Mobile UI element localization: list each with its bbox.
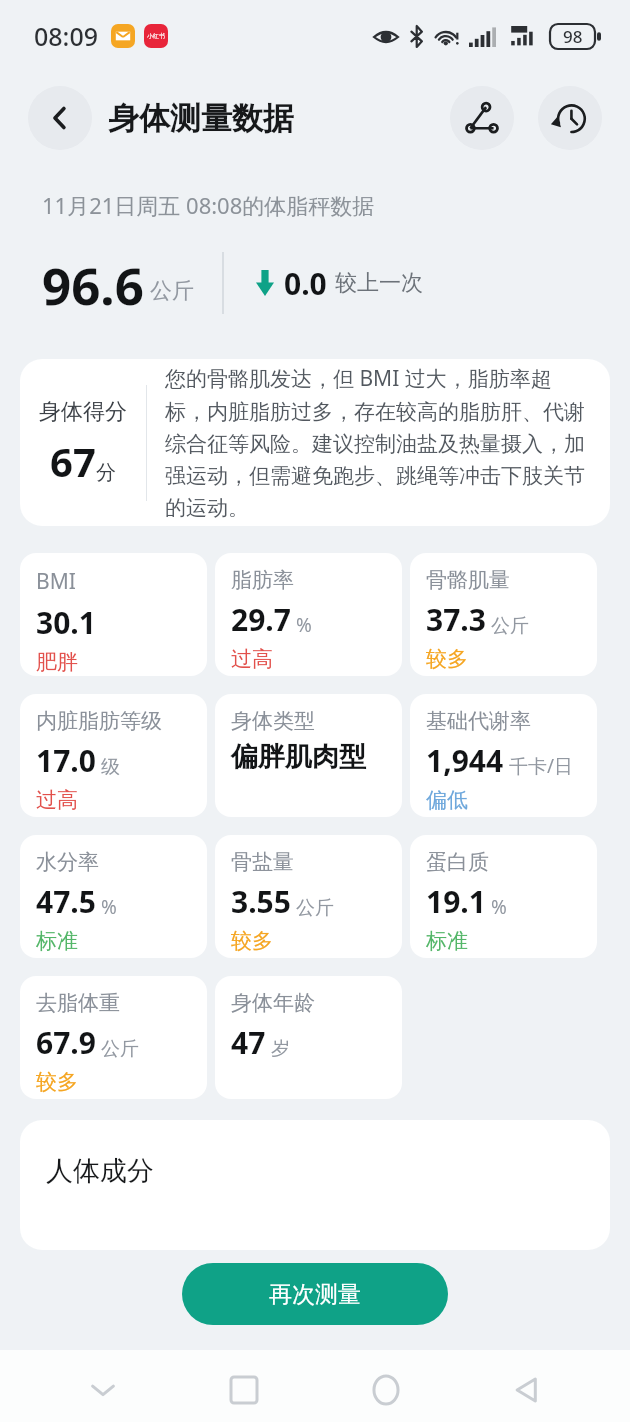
staticText: 47.5 xyxy=(36,881,96,922)
staticText: 公斤 xyxy=(101,1037,139,1061)
staticText: 公斤 xyxy=(491,614,529,638)
staticText: 公斤 xyxy=(296,896,334,920)
staticText: 08:09 xyxy=(34,19,99,53)
staticText: 骨盐量 xyxy=(231,849,294,875)
button[interactable]: 水分率 xyxy=(20,835,207,958)
staticText: 基础代谢率 xyxy=(426,708,531,734)
staticText: 身体年龄 xyxy=(231,990,315,1016)
button[interactable]: BMI xyxy=(20,553,207,676)
staticText: 96.6 xyxy=(42,250,144,316)
staticText: 岁 xyxy=(271,1037,290,1061)
staticText: 蛋白质 xyxy=(426,849,489,875)
staticText: % xyxy=(296,612,312,638)
staticText: 公斤 xyxy=(150,277,194,305)
staticText: 身体得分 xyxy=(39,398,127,426)
staticText: 去脂体重 xyxy=(36,990,120,1016)
staticText: 骨骼肌量 xyxy=(426,567,510,593)
staticText: 37.3 xyxy=(426,599,486,640)
staticText: 较多 xyxy=(231,928,273,954)
staticText: 0.0 xyxy=(284,263,327,304)
button[interactable]: Share xyxy=(450,86,514,150)
staticText: 较多 xyxy=(36,1069,78,1095)
staticText: 水分率 xyxy=(36,849,99,875)
staticText: 标准 xyxy=(426,928,468,954)
staticText: 较多 xyxy=(426,646,468,672)
button[interactable]: 身体得分 xyxy=(20,359,610,526)
button[interactable]: Home xyxy=(347,1358,425,1422)
staticText: 偏低 xyxy=(426,787,468,813)
staticText: 98 xyxy=(563,25,583,48)
staticText: % xyxy=(101,894,117,920)
staticText: 脂肪率 xyxy=(231,567,294,593)
staticText: 67 xyxy=(50,434,96,488)
button[interactable]: History xyxy=(538,86,602,150)
staticText: 30.1 xyxy=(36,602,96,643)
button[interactable]: 人体成分 xyxy=(20,1120,610,1250)
button[interactable]: 去脂体重 xyxy=(20,976,207,1099)
button[interactable]: 身体类型 xyxy=(215,694,402,817)
staticText: 肥胖 xyxy=(36,649,78,675)
staticText: 身体测量数据 xyxy=(108,99,294,138)
button[interactable]: 身体年龄 xyxy=(215,976,402,1099)
staticText: 内脏脂肪等级 xyxy=(36,708,162,734)
staticText: 17.0 xyxy=(36,740,96,781)
staticText: 您的骨骼肌发达，但 BMI 过大，脂肪率超标，内脏脂肪过多，存在较高的脂肪肝、代… xyxy=(165,364,592,521)
staticText: 1,944 xyxy=(426,740,504,781)
staticText: 千卡/日 xyxy=(509,753,574,779)
button[interactable]: 蛋白质 xyxy=(410,835,597,958)
staticText: 11月21日周五 08:08的体脂秤数据 xyxy=(42,190,375,220)
button[interactable]: 内脏脂肪等级 xyxy=(20,694,207,817)
button[interactable]: 脂肪率 xyxy=(215,553,402,676)
button[interactable]: 再次测量 xyxy=(182,1263,448,1325)
staticText: 过高 xyxy=(231,646,273,672)
button[interactable]: 基础代谢率 xyxy=(410,694,597,817)
button[interactable]: Recents xyxy=(205,1358,283,1422)
button[interactable]: Back xyxy=(488,1358,566,1422)
button[interactable]: 骨骼肌量 xyxy=(410,553,597,676)
staticText: 过高 xyxy=(36,787,78,813)
staticText: 67.9 xyxy=(36,1022,96,1063)
staticText: 19.1 xyxy=(426,881,486,922)
staticText: 身体类型 xyxy=(231,708,315,734)
button[interactable]: Hide keyboard xyxy=(64,1358,142,1422)
staticText: 3.55 xyxy=(231,881,291,922)
staticText: 较上一次 xyxy=(335,269,423,297)
staticText: 级 xyxy=(101,755,120,779)
button[interactable]: Back xyxy=(28,86,92,150)
staticText: 标准 xyxy=(36,928,78,954)
staticText: 偏胖肌肉型 xyxy=(231,740,366,774)
staticText: 再次测量 xyxy=(269,1280,361,1309)
staticText: BMI xyxy=(36,567,76,596)
staticText: 人体成分 xyxy=(46,1154,154,1188)
staticText: 分 xyxy=(96,460,116,485)
staticText: 29.7 xyxy=(231,599,291,640)
staticText: 小红书 xyxy=(147,32,165,40)
staticText: 47 xyxy=(231,1022,266,1063)
staticText: % xyxy=(491,894,507,920)
button[interactable]: 骨盐量 xyxy=(215,835,402,958)
